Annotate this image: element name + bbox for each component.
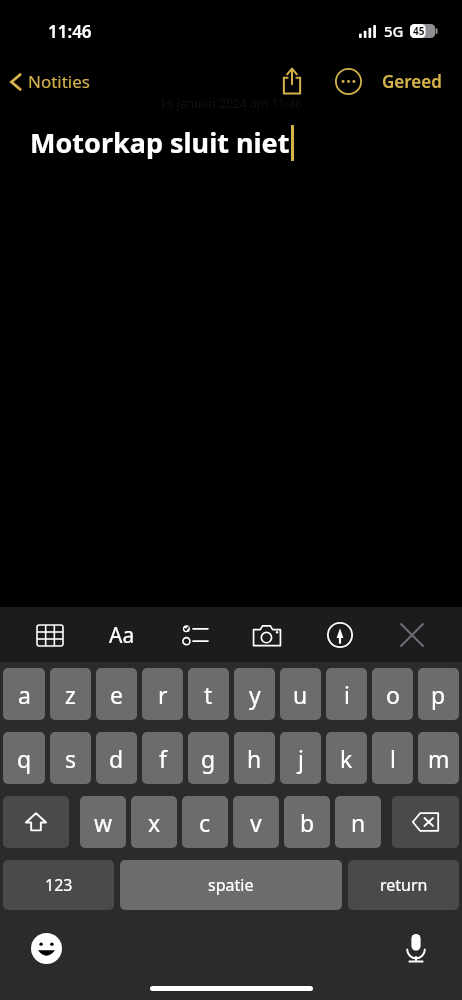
staticText: y — [249, 679, 261, 710]
button[interactable]: j — [280, 732, 321, 784]
button[interactable]: i — [326, 668, 367, 720]
button[interactable]: Camera — [244, 612, 290, 658]
staticText: g — [201, 743, 216, 774]
button[interactable]: Notities — [0, 66, 98, 97]
button[interactable]: More options — [326, 59, 370, 103]
button[interactable]: b — [284, 796, 330, 848]
button[interactable]: u — [280, 668, 321, 720]
button[interactable]: d — [96, 732, 137, 784]
button[interactable]: Share — [270, 59, 314, 103]
staticText: n — [351, 807, 366, 838]
staticText: q — [17, 743, 32, 774]
staticText: u — [293, 679, 308, 710]
button[interactable]: Gereed — [376, 62, 448, 101]
button[interactable]: Shift — [3, 796, 69, 848]
staticText: 11:46 — [48, 20, 92, 43]
staticText: v — [250, 807, 262, 838]
staticText: z — [65, 679, 76, 710]
button[interactable]: Motorkap sluit niet — [0, 104, 462, 1000]
button[interactable]: Table — [27, 612, 73, 658]
staticText: Gereed — [382, 70, 442, 93]
staticText: return — [380, 874, 428, 896]
staticText: a — [18, 679, 31, 710]
staticText: 45 — [413, 24, 425, 38]
staticText: Motorkap sluit niet — [30, 124, 290, 161]
staticText: s — [65, 743, 77, 774]
staticText: 5G — [384, 21, 404, 41]
button[interactable]: Emoji — [22, 924, 70, 972]
button[interactable]: q — [3, 732, 45, 784]
staticText: 16 januari 2024 om 11:46 — [0, 95, 462, 111]
staticText: t — [204, 679, 213, 710]
staticText: h — [247, 743, 262, 774]
staticText: o — [386, 679, 400, 710]
staticText: w — [94, 807, 113, 838]
staticText: k — [340, 743, 353, 774]
staticText: j — [298, 743, 304, 774]
button[interactable]: z — [50, 668, 91, 720]
staticText: d — [109, 743, 124, 774]
staticText: spatie — [208, 874, 254, 896]
button[interactable]: p — [418, 668, 459, 720]
staticText: Aa — [109, 621, 135, 650]
button[interactable]: spatie — [120, 860, 342, 910]
button[interactable]: return — [348, 860, 459, 910]
button[interactable]: Format text — [99, 612, 145, 658]
button[interactable]: x — [131, 796, 177, 848]
staticText: c — [199, 807, 211, 838]
button[interactable]: v — [233, 796, 279, 848]
button[interactable]: Close keyboard — [389, 612, 435, 658]
button[interactable]: c — [182, 796, 228, 848]
button[interactable]: Checklist — [172, 612, 218, 658]
button[interactable]: e — [96, 668, 137, 720]
button[interactable]: f — [142, 732, 183, 784]
button[interactable]: r — [142, 668, 183, 720]
staticText: l — [390, 743, 396, 774]
staticText: p — [431, 679, 446, 710]
button[interactable]: n — [335, 796, 381, 848]
staticText: m — [428, 743, 450, 774]
button[interactable]: Dictate — [392, 924, 440, 972]
button[interactable]: y — [234, 668, 275, 720]
staticText: f — [159, 743, 167, 774]
button[interactable]: g — [188, 732, 229, 784]
button[interactable]: m — [418, 732, 459, 784]
button[interactable]: w — [80, 796, 126, 848]
button[interactable]: o — [372, 668, 413, 720]
button[interactable]: l — [372, 732, 413, 784]
staticText: i — [344, 679, 350, 710]
button[interactable]: Markup — [317, 612, 363, 658]
button[interactable]: t — [188, 668, 229, 720]
button[interactable]: 123 — [3, 860, 114, 910]
staticText: x — [148, 807, 161, 838]
staticText: Notities — [28, 70, 90, 93]
button[interactable]: a — [3, 668, 45, 720]
staticText: r — [158, 679, 168, 710]
staticText: e — [110, 679, 123, 710]
staticText: b — [300, 807, 315, 838]
staticText: 123 — [45, 874, 73, 896]
button[interactable]: k — [326, 732, 367, 784]
button[interactable]: h — [234, 732, 275, 784]
button[interactable]: s — [50, 732, 91, 784]
button[interactable]: Backspace — [392, 796, 459, 848]
